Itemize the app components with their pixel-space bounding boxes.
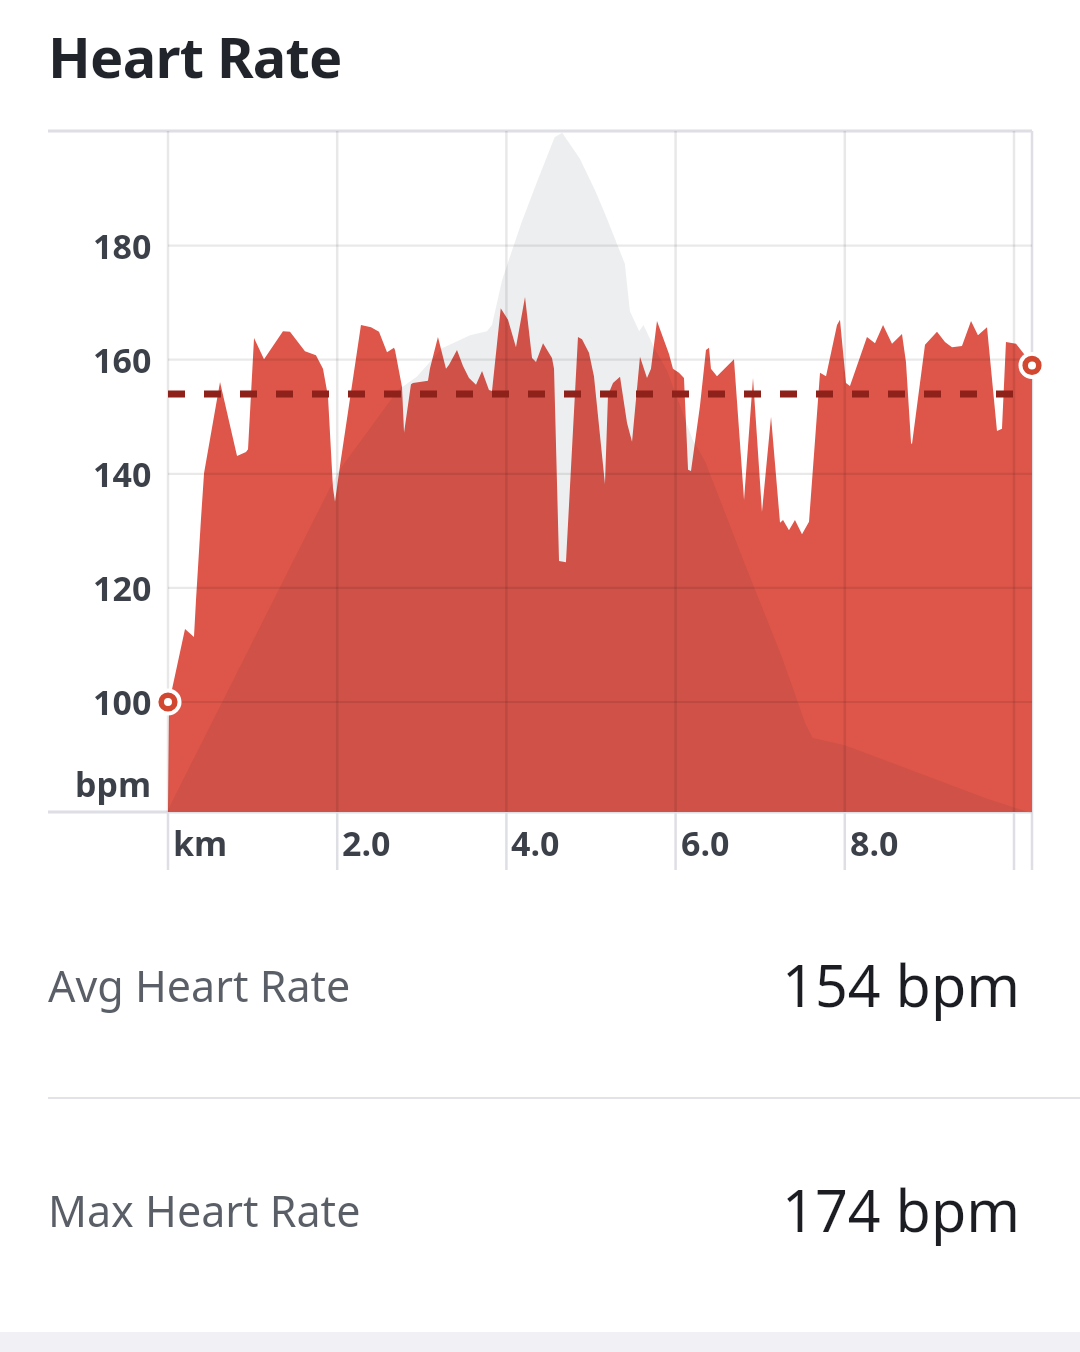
button[interactable]: Avg Heart Rate (0, 888, 1080, 1082)
staticText: 120 (93, 565, 152, 611)
button[interactable]: Max Heart Rate (0, 1113, 1080, 1307)
staticText: 100 (93, 679, 152, 725)
staticText: 160 (93, 337, 152, 383)
staticText: Avg Heart Rate (48, 956, 351, 1015)
staticText: Max Heart Rate (48, 1181, 361, 1240)
staticText: Heart Rate (48, 18, 342, 94)
staticText: bpm (75, 761, 152, 807)
staticText: 6.0 (681, 820, 730, 866)
staticText: km (173, 820, 228, 866)
staticText: 154 bpm (782, 946, 1021, 1024)
staticText: 140 (93, 451, 152, 497)
staticText: 4.0 (511, 820, 560, 866)
staticText: 174 bpm (782, 1171, 1021, 1249)
staticText: 180 (93, 223, 152, 269)
staticText: 2.0 (342, 820, 391, 866)
staticText: 8.0 (850, 820, 899, 866)
